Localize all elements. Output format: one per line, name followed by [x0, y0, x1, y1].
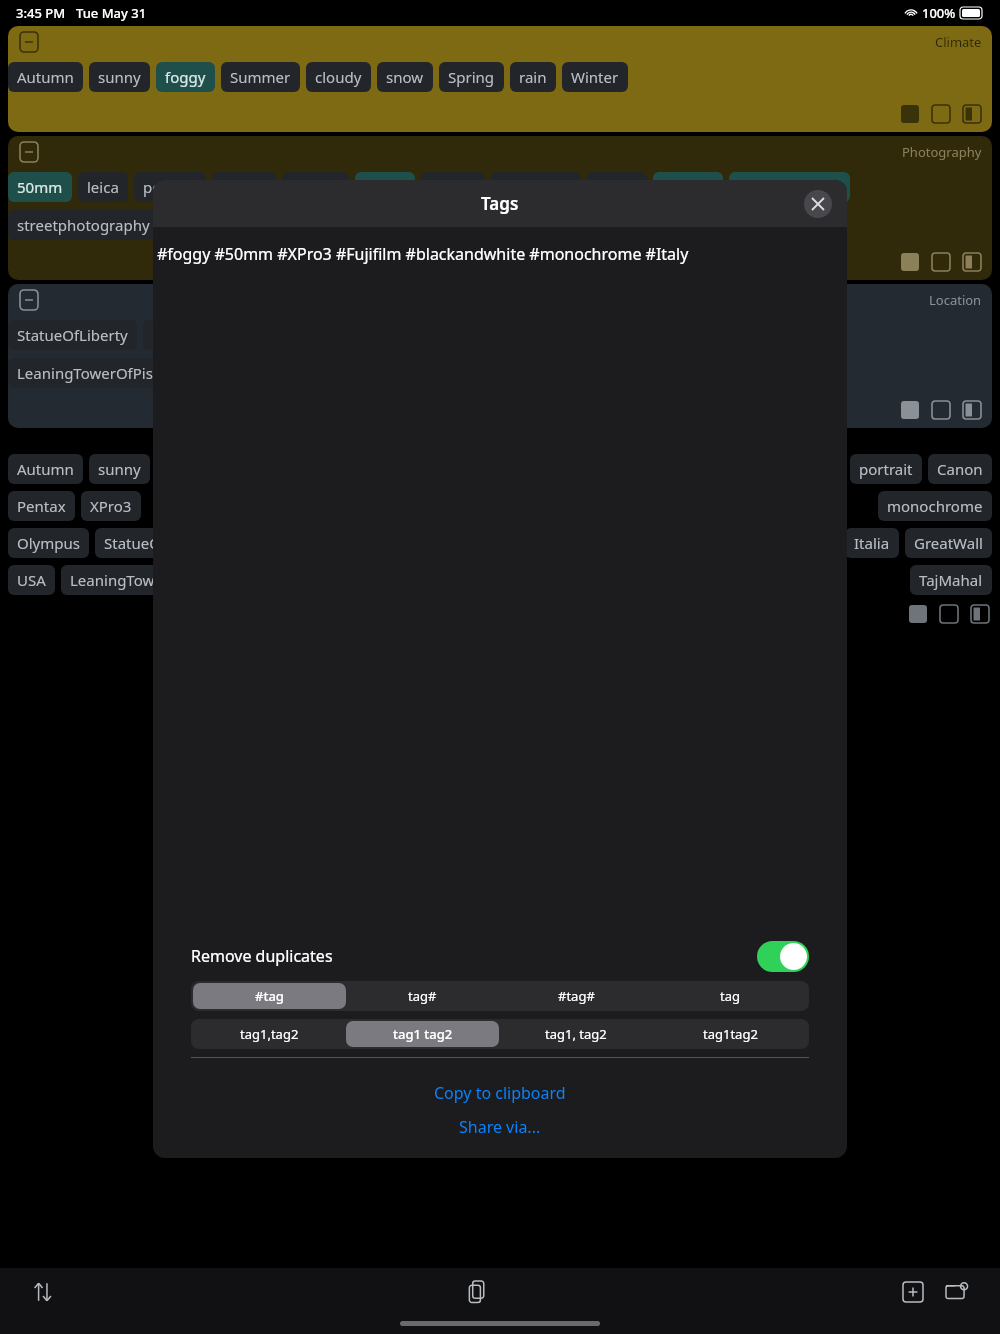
button[interactable]: Olympus — [8, 528, 89, 558]
staticText: Tue May 31 — [76, 4, 147, 22]
staticText: Summer — [230, 67, 291, 87]
button[interactable]: Fujifilm — [653, 172, 723, 202]
button[interactable]: leicaM — [421, 172, 485, 202]
button[interactable]: Canon — [212, 172, 276, 202]
button[interactable]: tag1, tag2 — [499, 1021, 653, 1047]
button[interactable]: StatueOfLiberty — [8, 320, 137, 350]
button[interactable]: #tag# — [499, 983, 653, 1009]
button[interactable]: LeaningTowerOfPisa — [8, 358, 171, 388]
button[interactable]: Autumn — [8, 62, 83, 92]
staticText: tag1 tag2 — [393, 1025, 453, 1043]
staticText: snow — [386, 67, 424, 87]
button[interactable]: Share via... — [153, 1110, 847, 1144]
button[interactable]: sunny — [89, 454, 150, 484]
staticText: StatueOfLiberty — [104, 533, 215, 553]
button[interactable]: Pentax — [282, 172, 349, 202]
button[interactable]: monochrome — [878, 491, 992, 521]
button[interactable]: Outline view — [929, 398, 953, 422]
staticText: tag1,tag2 — [240, 1025, 299, 1043]
button[interactable]: Winter — [562, 62, 628, 92]
staticText: portrait — [859, 459, 913, 479]
button[interactable]: Split view — [960, 398, 984, 422]
button[interactable]: Pentax — [8, 491, 75, 521]
button[interactable]: Panasonic — [491, 172, 581, 202]
button[interactable]: LeaningTowerOfPisa — [61, 565, 224, 595]
staticText: tag1tag2 — [703, 1025, 758, 1043]
staticText: tag1, tag2 — [545, 1025, 607, 1043]
staticText: Canon — [937, 459, 983, 479]
button[interactable]: Outline view — [937, 602, 961, 626]
button[interactable]: Summer — [221, 62, 300, 92]
button[interactable]: tag — [653, 983, 807, 1009]
button[interactable]: Outline view — [929, 102, 953, 126]
staticText: 50mm — [17, 177, 63, 197]
button[interactable]: Collapse section — [18, 31, 40, 53]
button[interactable]: Copy to clipboard — [153, 1076, 847, 1110]
button[interactable]: tag1tag2 — [653, 1021, 807, 1047]
button[interactable]: XPro3 — [355, 172, 415, 202]
staticText: Share via... — [459, 1116, 541, 1138]
button[interactable]: portrait — [850, 454, 922, 484]
button[interactable]: Canon — [928, 454, 992, 484]
button[interactable]: Outline view — [929, 250, 953, 274]
button[interactable]: Spring — [439, 62, 504, 92]
button[interactable]: Copy — [458, 1272, 498, 1312]
button[interactable]: sunny — [89, 62, 150, 92]
button[interactable]: portrait — [134, 172, 206, 202]
button[interactable]: cloudy — [306, 62, 371, 92]
button[interactable]: tag1,tag2 — [193, 1021, 346, 1047]
button[interactable]: GreatWall — [143, 320, 230, 350]
staticText: Nikon — [596, 177, 638, 197]
button[interactable]: New folder — [940, 1275, 974, 1309]
button[interactable]: Grid view — [898, 102, 922, 126]
button[interactable]: Sort — [26, 1275, 60, 1309]
button[interactable]: tag1 tag2 — [346, 1021, 499, 1047]
button[interactable]: StatueOfLiberty — [95, 528, 224, 558]
staticText: Canon — [221, 177, 267, 197]
button[interactable]: Remove duplicates — [191, 934, 809, 978]
button[interactable]: Italia — [845, 528, 899, 558]
button[interactable]: #tag — [193, 983, 346, 1009]
staticText: XPro3 — [90, 496, 132, 516]
button[interactable]: Split view — [968, 602, 992, 626]
staticText: blackandwhite — [738, 177, 841, 197]
button[interactable]: XPro3 — [81, 491, 141, 521]
button[interactable]: Split view — [960, 102, 984, 126]
button[interactable]: Grid view — [898, 398, 922, 422]
staticText: sunny — [98, 459, 141, 479]
button[interactable]: TajMahal — [910, 565, 992, 595]
button[interactable]: rain — [510, 62, 556, 92]
staticText: Photography — [902, 143, 982, 161]
button[interactable]: Collapse section — [18, 289, 40, 311]
staticText: leicaM — [430, 177, 476, 197]
button[interactable]: leica — [78, 172, 128, 202]
staticText: cloudy — [315, 67, 362, 87]
staticText: Autumn — [17, 67, 74, 87]
button[interactable]: Grid view — [906, 602, 930, 626]
staticText: USA — [17, 570, 46, 590]
button[interactable]: 50mm — [8, 172, 72, 202]
button[interactable]: foggy — [156, 62, 215, 92]
staticText: Olympus — [17, 533, 80, 553]
button[interactable]: GreatWall — [905, 528, 992, 558]
staticText: monochrome — [887, 496, 983, 516]
staticText: 3:45 PM — [16, 4, 66, 22]
button[interactable]: Add tag — [896, 1275, 930, 1309]
staticText: Location — [929, 291, 982, 309]
button[interactable]: streetphotography — [8, 210, 159, 240]
staticText: Pentax — [17, 496, 66, 516]
button[interactable]: blackandwhite — [729, 172, 850, 202]
staticText: Climate — [935, 33, 982, 51]
button[interactable]: Autumn — [8, 454, 83, 484]
button[interactable]: Split view — [960, 250, 984, 274]
button[interactable]: Grid view — [898, 250, 922, 274]
button[interactable]: USA — [8, 565, 55, 595]
button[interactable]: snow — [377, 62, 433, 92]
button[interactable]: Collapse section — [18, 141, 40, 163]
button[interactable]: Close — [804, 190, 832, 218]
button[interactable]: tag# — [346, 983, 499, 1009]
staticText: LeaningTowerOfPisa — [70, 570, 215, 590]
staticText: GreatWall — [914, 533, 983, 553]
button[interactable]: Nikon — [587, 172, 647, 202]
